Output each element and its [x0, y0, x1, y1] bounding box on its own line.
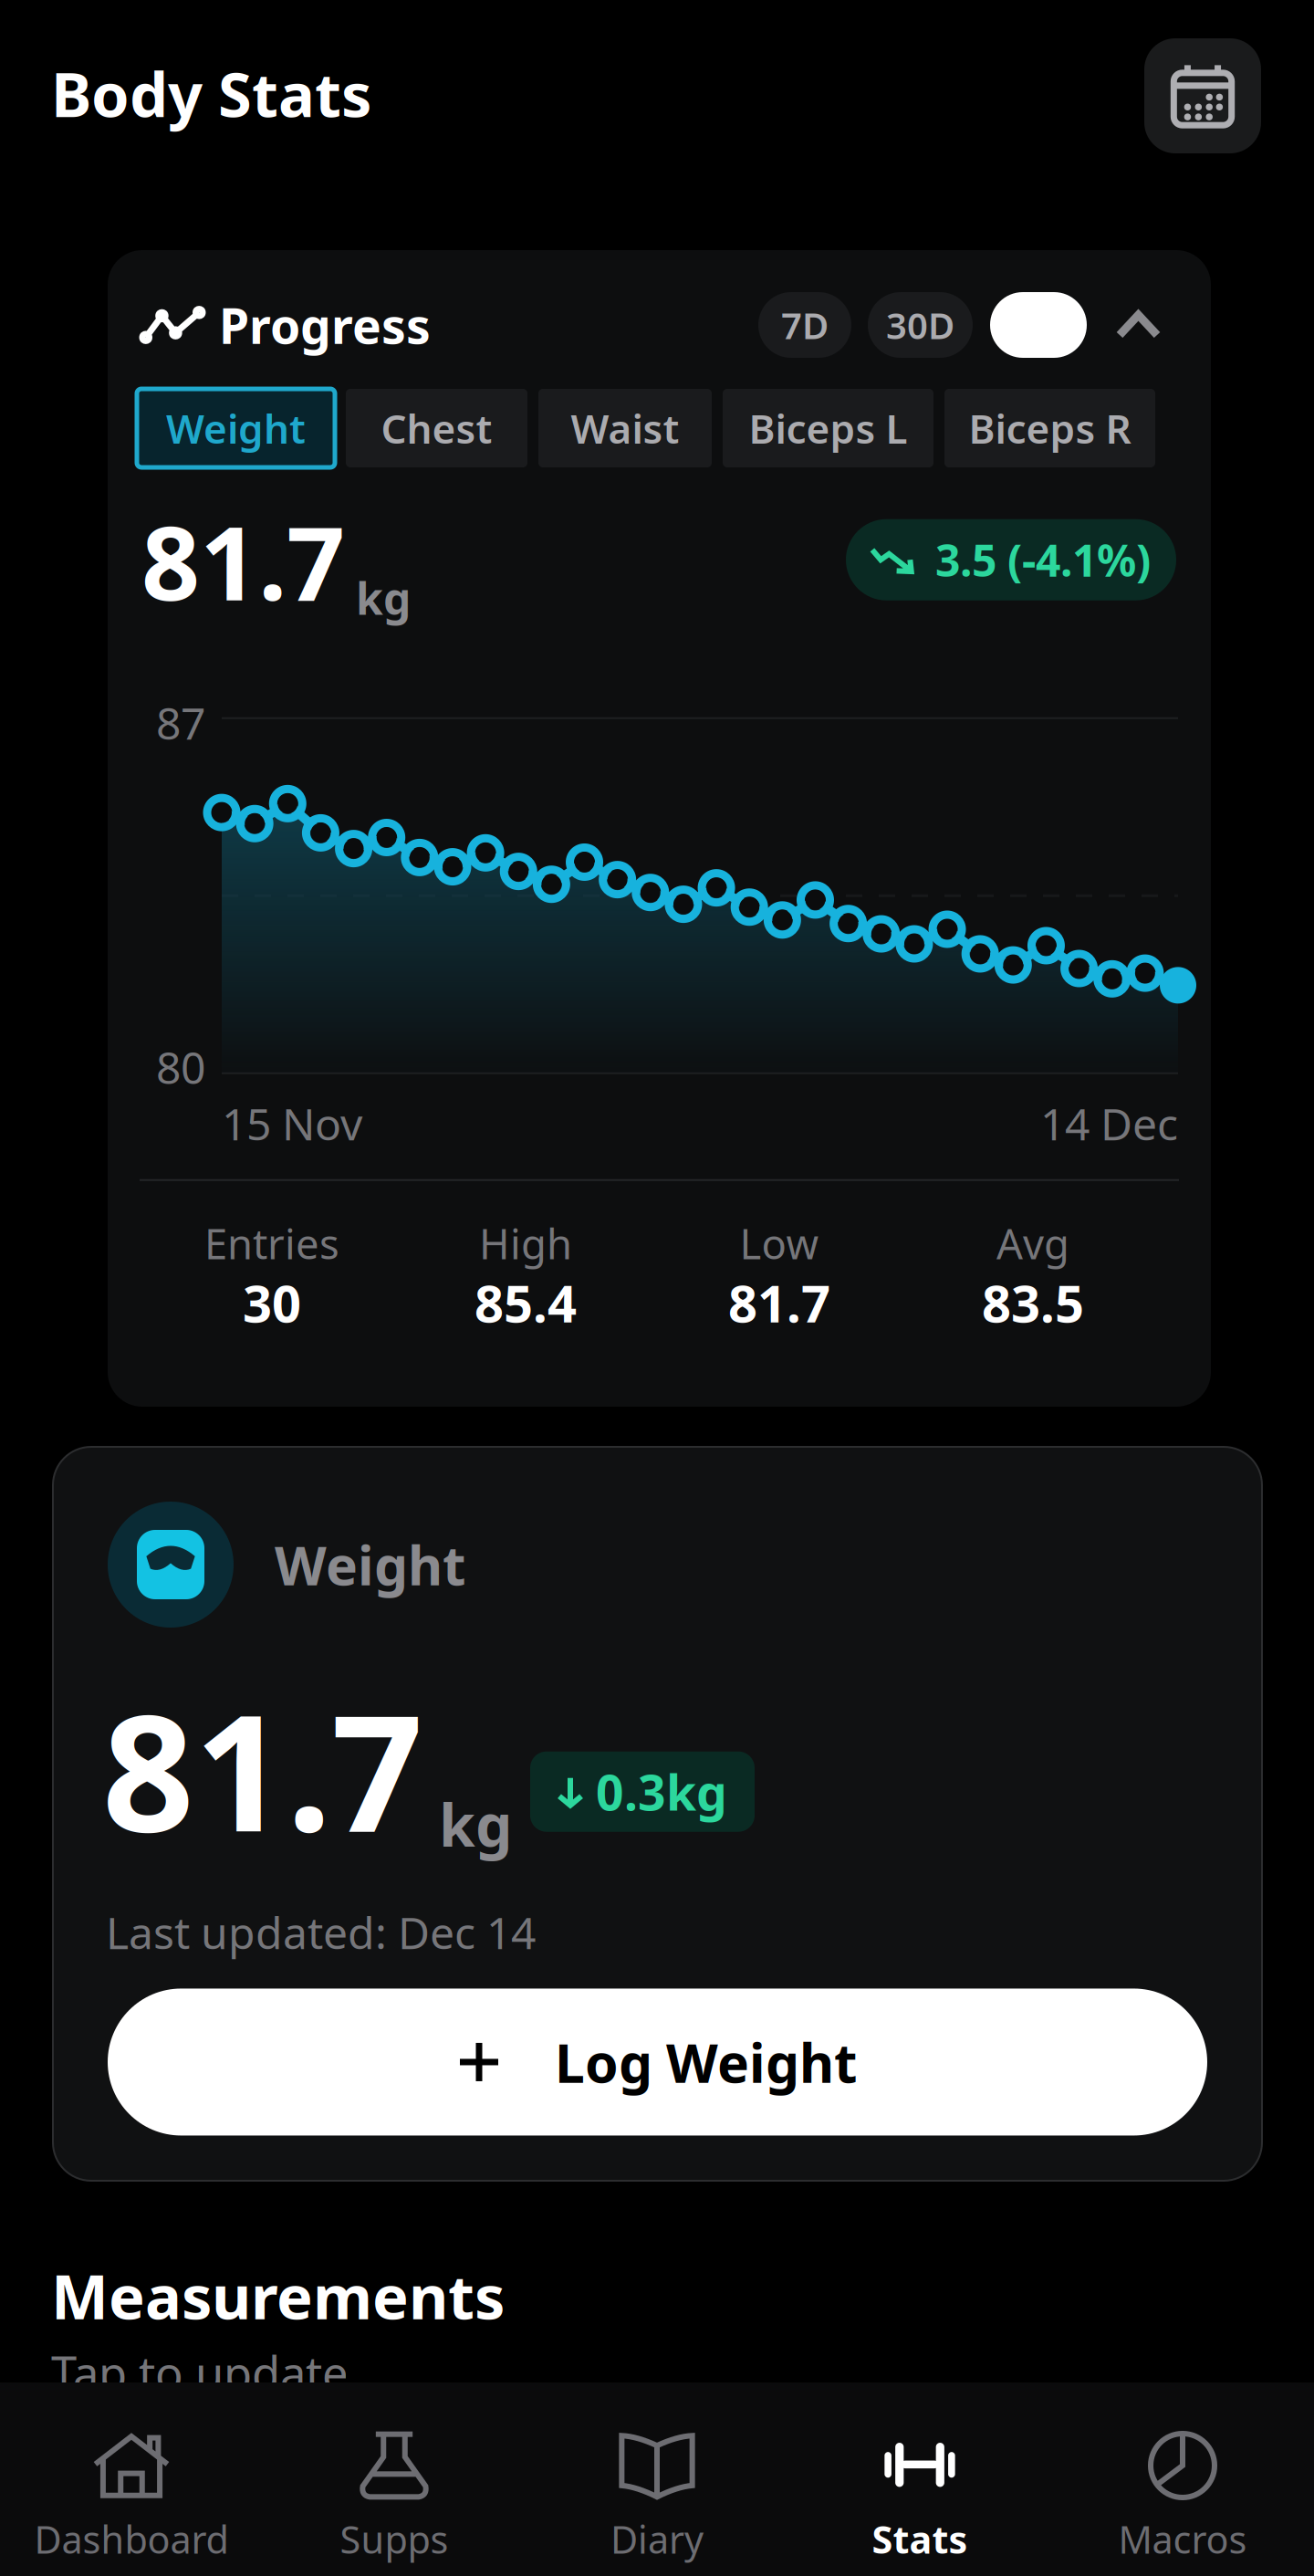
button[interactable]: Stats	[788, 2382, 1051, 2576]
staticText: Weight	[166, 401, 306, 455]
button[interactable]: Waist	[538, 389, 712, 467]
staticText: 7D	[781, 301, 829, 349]
staticText: Avg	[996, 1216, 1069, 1271]
staticText: Macros	[1118, 2514, 1247, 2564]
staticText: 3.5 (-4.1%)	[913, 531, 1151, 589]
staticText: Supps	[340, 2514, 448, 2564]
button[interactable]: Supps	[263, 2382, 526, 2576]
button[interactable]: Dashboard	[0, 2382, 263, 2576]
button[interactable]: Calendar	[1144, 38, 1261, 153]
staticText: 30	[243, 1269, 301, 1337]
button[interactable]: 7D	[758, 292, 851, 358]
staticText: Dashboard	[34, 2514, 229, 2564]
button[interactable]: Diary	[526, 2382, 788, 2576]
staticText: 15 Nov	[222, 1094, 362, 1152]
staticText: 14 Dec	[1040, 1094, 1178, 1152]
staticText: 81.7	[141, 493, 345, 629]
staticText: 85.4	[474, 1269, 577, 1337]
staticText: 81.7	[728, 1269, 830, 1337]
button[interactable]: 90D	[990, 292, 1087, 358]
staticText: Chest	[381, 401, 492, 455]
staticText: kg	[345, 569, 411, 627]
staticText: kg	[423, 1785, 512, 1863]
staticText: Measurements	[51, 2255, 505, 2336]
staticText: 81.7	[102, 1662, 423, 1876]
staticText: Progress	[219, 293, 431, 357]
button[interactable]: Biceps R	[944, 389, 1155, 467]
staticText: Entries	[204, 1216, 339, 1271]
staticText: 80	[156, 1038, 205, 1096]
button[interactable]: Log Weight	[108, 1989, 1207, 2136]
button[interactable]: Weight	[137, 389, 335, 467]
button[interactable]: 30D	[868, 292, 973, 358]
staticText: 0.3kg	[583, 1759, 727, 1824]
staticText: 30D	[886, 301, 954, 349]
staticText: Waist	[571, 401, 679, 455]
staticText: Biceps R	[969, 401, 1131, 455]
button[interactable]: Biceps L	[723, 389, 933, 467]
staticText: Diary	[610, 2514, 704, 2564]
staticText: High	[479, 1216, 572, 1271]
staticText: Low	[740, 1216, 819, 1271]
staticText: Weight	[234, 1529, 465, 1600]
button[interactable]: Collapse	[1087, 292, 1163, 358]
button[interactable]: Chest	[346, 389, 527, 467]
staticText: Biceps L	[749, 401, 907, 455]
button[interactable]: Macros	[1051, 2382, 1314, 2576]
staticText: Log Weight	[500, 2026, 857, 2098]
staticText: Last updated: Dec 14	[106, 1903, 536, 1961]
staticText: Stats	[872, 2514, 968, 2564]
staticText: Tap to update	[51, 2341, 349, 2403]
staticText: 83.5	[982, 1269, 1084, 1337]
staticText: Body Stats	[51, 53, 371, 134]
staticText: 87	[156, 693, 205, 752]
